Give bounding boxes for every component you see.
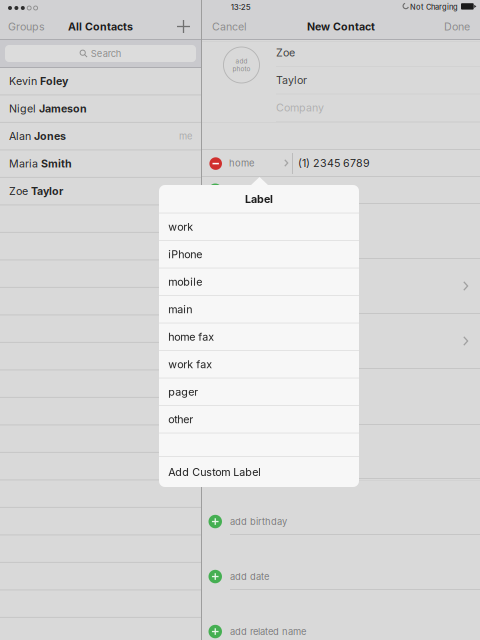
- button[interactable]: Delete phone number: [209, 157, 222, 170]
- staticText: New Contact: [307, 20, 375, 33]
- button[interactable]: main: [159, 295, 359, 323]
- staticText: Taylor: [276, 73, 307, 86]
- button[interactable]: Alan: [0, 123, 201, 150]
- staticText: mobile: [168, 275, 202, 288]
- button[interactable]: Text Tone: [202, 314, 480, 368]
- staticText: Alan: [9, 130, 34, 143]
- staticText: pager: [168, 385, 198, 398]
- button[interactable]: iPhone: [159, 240, 359, 268]
- staticText: All Contacts: [68, 20, 133, 33]
- staticText: 13:25: [231, 2, 251, 12]
- staticText: add: [235, 57, 247, 65]
- button[interactable]: Groups: [8, 14, 66, 39]
- staticText: Groups: [8, 20, 45, 33]
- button[interactable]: Add photo: [223, 47, 260, 83]
- staticText: add url: [230, 376, 262, 388]
- staticText: photo: [232, 65, 250, 73]
- staticText: Search: [91, 48, 122, 59]
- button[interactable]: add url: [230, 369, 370, 395]
- staticText: me: [179, 131, 192, 142]
- button[interactable]: work fax: [159, 350, 359, 378]
- button[interactable]: home: [229, 150, 289, 176]
- button[interactable]: pager: [159, 378, 359, 405]
- button[interactable]: add date: [230, 563, 380, 590]
- staticText: work fax: [168, 358, 212, 371]
- staticText: home: [229, 157, 254, 169]
- staticText: Company: [276, 101, 324, 114]
- staticText: Not Charging: [410, 2, 458, 11]
- staticText: Jameson: [39, 102, 87, 115]
- button[interactable]: Nigel: [0, 95, 201, 122]
- staticText: add phone: [230, 184, 279, 196]
- button[interactable]: mobile: [159, 268, 359, 295]
- staticText: Add Custom Label: [168, 465, 261, 478]
- staticText: Smith: [41, 157, 72, 170]
- button[interactable]: add email: [230, 204, 370, 230]
- staticText: (1) 2345 6789: [298, 156, 370, 169]
- staticText: add date: [230, 571, 269, 582]
- staticText: add birthday: [230, 516, 287, 527]
- button[interactable]: add birthday: [230, 508, 380, 535]
- button[interactable]: Done: [418, 14, 470, 39]
- button[interactable]: Zoe: [0, 178, 201, 205]
- staticText: add email: [230, 211, 272, 223]
- button[interactable]: work: [159, 213, 359, 240]
- button[interactable]: Search: [5, 45, 196, 62]
- staticText: Foley: [40, 75, 68, 88]
- button[interactable]: add phone: [230, 177, 370, 203]
- staticText: add related name: [230, 626, 306, 637]
- button[interactable]: add address: [230, 425, 370, 451]
- staticText: work: [168, 220, 193, 233]
- staticText: other: [168, 413, 193, 426]
- staticText: Zoe: [276, 46, 295, 59]
- button[interactable]: other: [159, 405, 359, 433]
- staticText: Default: [213, 286, 249, 299]
- staticText: main: [168, 303, 192, 316]
- staticText: Nigel: [9, 102, 39, 115]
- staticText: home fax: [168, 330, 214, 343]
- staticText: Kevin: [9, 75, 40, 88]
- button[interactable]: Add contact: [171, 14, 196, 39]
- staticText: Label: [245, 192, 273, 205]
- button[interactable]: add related name: [230, 618, 380, 640]
- staticText: Zoe: [9, 185, 31, 198]
- staticText: Maria: [9, 157, 41, 170]
- staticText: Taylor: [31, 185, 63, 198]
- staticText: Done: [444, 20, 470, 33]
- staticText: Jones: [34, 130, 66, 143]
- button[interactable]: Kevin: [0, 68, 201, 95]
- button[interactable]: Maria: [0, 150, 201, 177]
- button[interactable]: Cancel: [212, 14, 272, 39]
- button[interactable]: home fax: [159, 323, 359, 350]
- staticText: iPhone: [168, 248, 202, 261]
- button[interactable]: Ringtone: [202, 259, 480, 313]
- staticText: add address: [230, 432, 285, 444]
- button[interactable]: Add Custom Label: [159, 457, 359, 487]
- staticText: Default: [213, 341, 249, 354]
- staticText: Cancel: [212, 20, 247, 33]
